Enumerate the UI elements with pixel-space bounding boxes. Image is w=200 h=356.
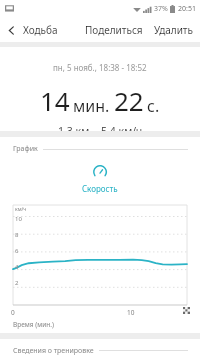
staticText: 8: [15, 231, 19, 239]
staticText: 1,3 км: [58, 124, 90, 131]
button[interactable]: Назад: [0, 19, 22, 41]
staticText: 37%: [154, 4, 168, 14]
staticText: 22: [114, 83, 144, 118]
staticText: График: [13, 144, 38, 154]
other: Скорость: [93, 165, 107, 179]
staticText: Сведения о тренировке: [13, 346, 94, 356]
staticText: 0: [11, 308, 15, 317]
staticText: пн, 5 нояб., 18:38 - 18:52: [53, 62, 147, 73]
staticText: км/ч: [15, 206, 27, 213]
staticText: 4: [15, 263, 19, 271]
staticText: 2: [15, 279, 19, 287]
button[interactable]: Скорость: [0, 165, 200, 194]
staticText: Время (мин.): [13, 320, 54, 329]
staticText: Скорость: [82, 183, 118, 194]
staticText: 5,4 км/ч: [101, 124, 143, 131]
button[interactable]: Удалить: [151, 19, 200, 41]
staticText: мин.: [73, 95, 110, 117]
button[interactable]: Ходьба: [22, 23, 59, 37]
staticText: с.: [147, 95, 160, 117]
staticText: 14: [40, 83, 70, 118]
other: Финиш: [183, 307, 190, 314]
staticText: 10: [127, 308, 135, 317]
staticText: 20:51: [178, 4, 196, 14]
staticText: 6: [15, 247, 19, 255]
button[interactable]: Поделиться: [82, 19, 146, 41]
staticText: 10: [15, 215, 22, 223]
